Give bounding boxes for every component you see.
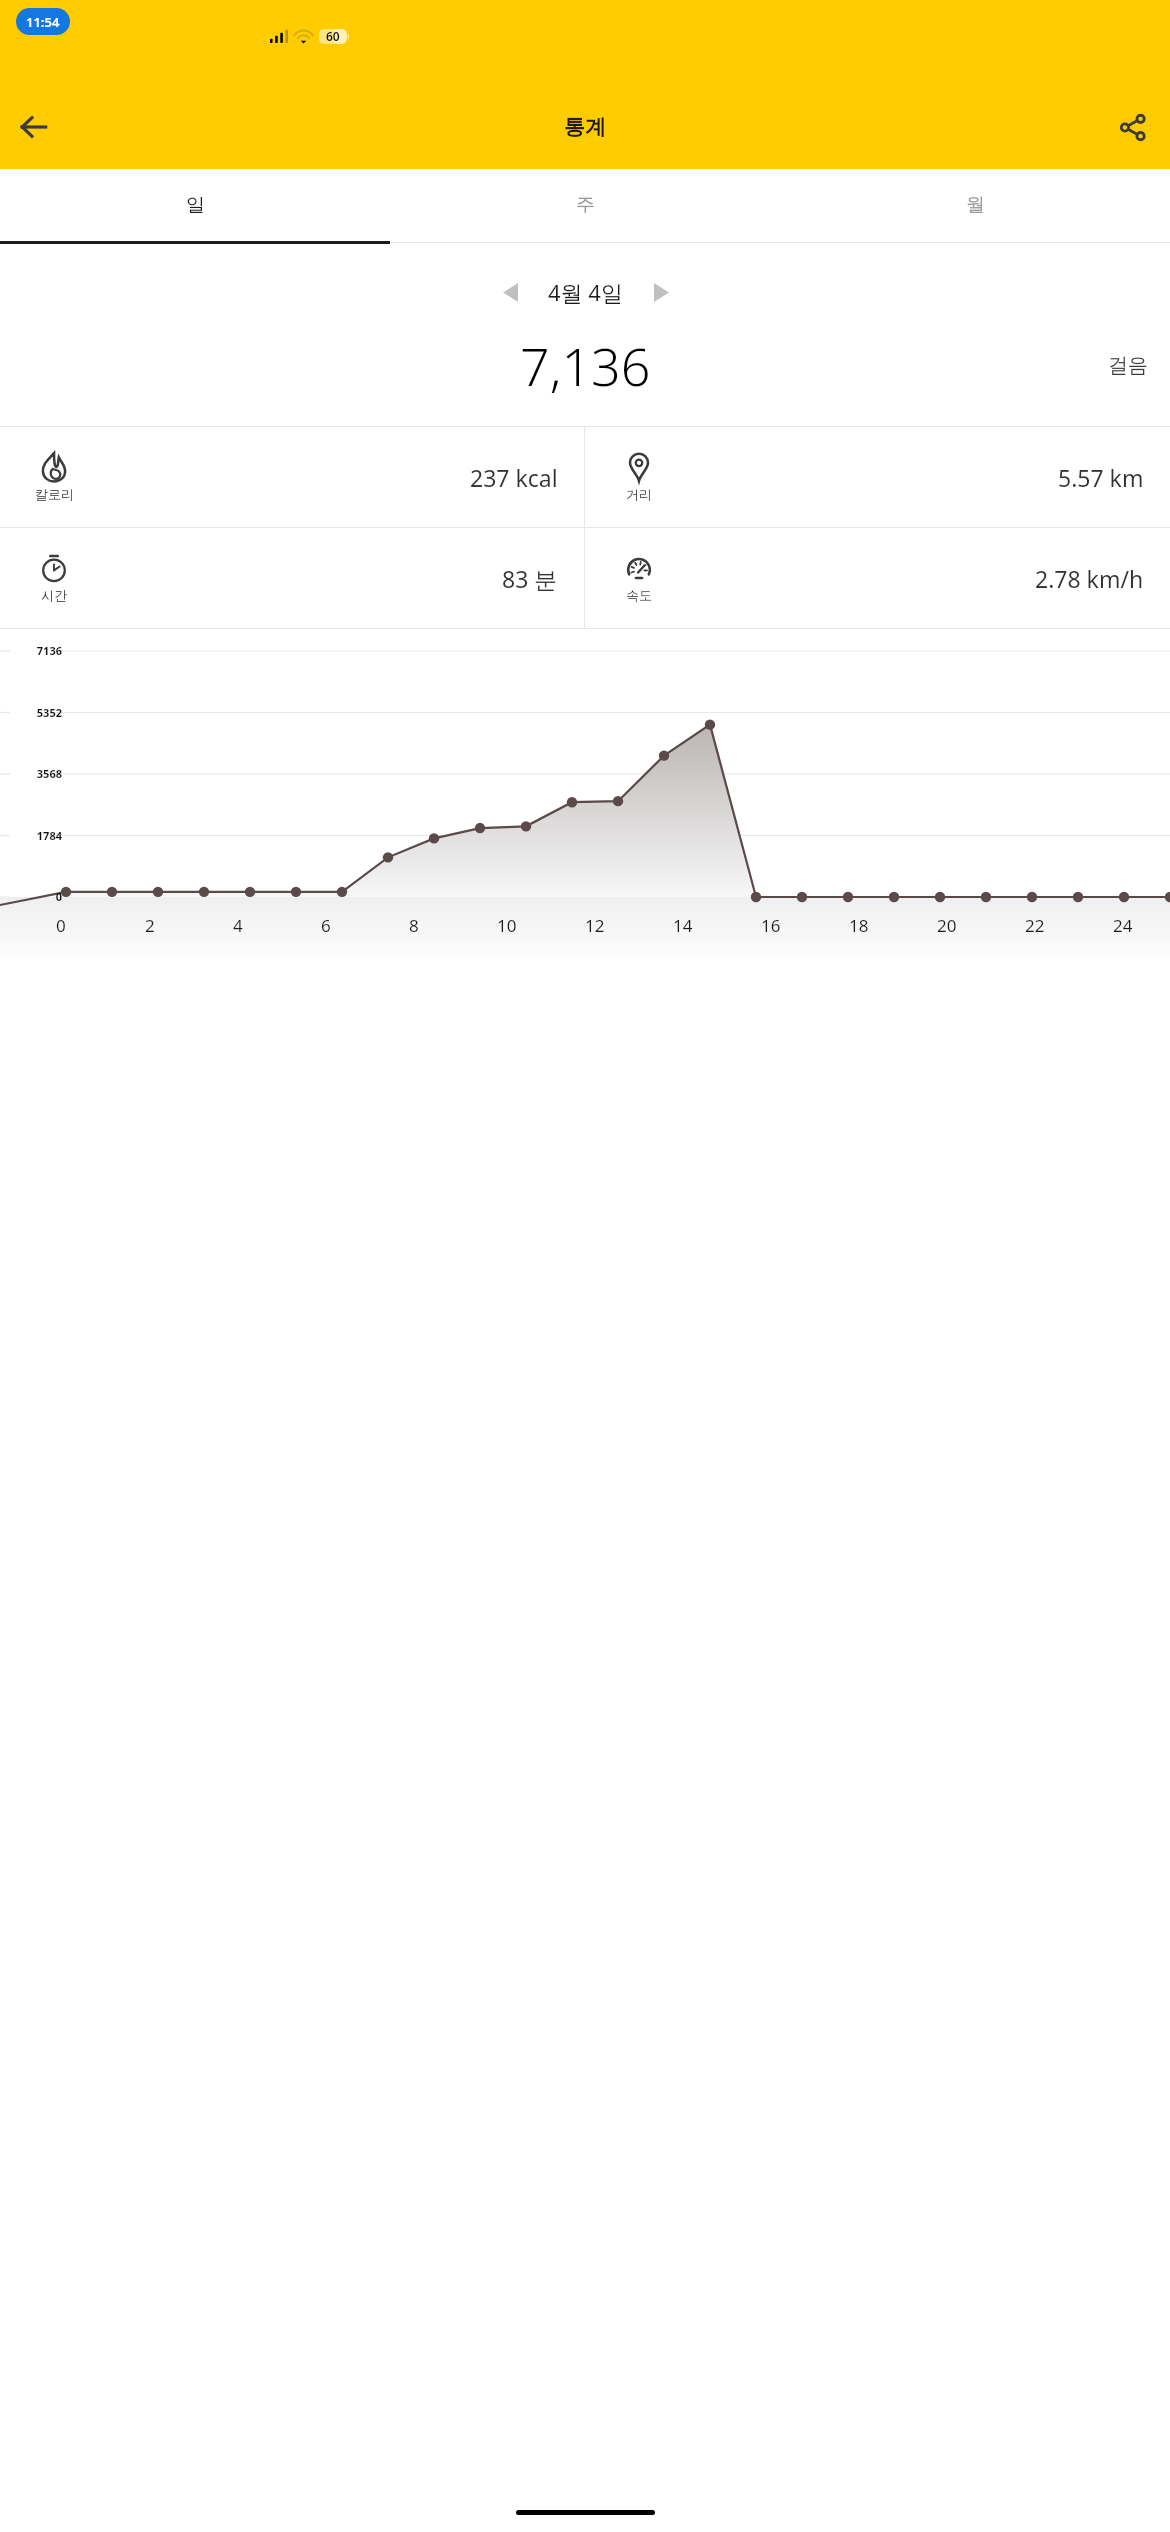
staticText: 2 (145, 914, 155, 937)
staticText: 걸음 (1108, 353, 1148, 378)
staticText: 24 (1113, 914, 1133, 937)
staticText: 월 (966, 193, 985, 217)
staticText: 5352 (12, 705, 62, 720)
staticText: 5.57 km (1058, 462, 1144, 493)
staticText: 7136 (12, 643, 62, 658)
staticText: 4월 4일 (548, 277, 623, 307)
button[interactable]: Back (6, 99, 62, 155)
staticText: 22 (1025, 914, 1045, 937)
staticText: 60 (326, 28, 340, 44)
staticText: 통계 (564, 114, 606, 140)
staticText: 14 (673, 914, 693, 937)
staticText: 237 kcal (470, 462, 558, 493)
button[interactable]: 시간 (0, 528, 584, 628)
staticText: 속도 (626, 587, 652, 603)
staticText: 8 (409, 914, 419, 937)
staticText: 12 (585, 914, 605, 937)
staticText: 0 (12, 889, 62, 904)
staticText: 시간 (41, 587, 67, 603)
staticText: 1784 (12, 828, 62, 843)
staticText: 3568 (12, 766, 62, 781)
button[interactable]: 일 (0, 169, 390, 241)
button[interactable]: 칼로리 (0, 427, 584, 527)
button[interactable]: Previous day (484, 266, 536, 318)
staticText: 6 (321, 914, 331, 937)
staticText: 4 (233, 914, 243, 937)
staticText: 16 (761, 914, 781, 937)
staticText: 11:54 (26, 13, 60, 31)
button[interactable]: 거리 (585, 427, 1170, 527)
staticText: 7,136 (520, 330, 651, 401)
staticText: 18 (849, 914, 869, 937)
staticText: 칼로리 (35, 486, 74, 502)
button[interactable]: Next day (635, 266, 687, 318)
staticText: 10 (497, 914, 517, 937)
staticText: 거리 (626, 486, 652, 502)
button[interactable]: 주 (390, 169, 780, 241)
staticText: 83 분 (502, 563, 558, 594)
staticText: 20 (937, 914, 957, 937)
button[interactable]: 월 (780, 169, 1170, 241)
button[interactable]: 속도 (585, 528, 1170, 628)
staticText: 0 (56, 914, 66, 937)
staticText: 2.78 km/h (1035, 563, 1144, 594)
button[interactable]: Share (1104, 99, 1160, 155)
staticText: 주 (576, 193, 595, 217)
staticText: 일 (186, 193, 205, 217)
